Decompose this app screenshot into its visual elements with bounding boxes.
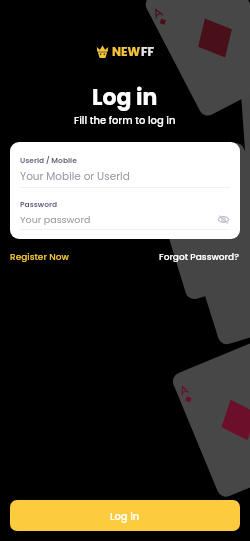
staticText: Userid / Mobile [20, 155, 77, 165]
staticText: Forgot Password? [159, 251, 240, 264]
button[interactable]: Forgot Password? [159, 251, 240, 264]
staticText: Your password [20, 213, 217, 226]
staticText: Log in [110, 509, 140, 523]
staticText: Register Now [10, 251, 69, 264]
staticText: Fill the form to log in [74, 113, 176, 127]
button[interactable]: Register Now [10, 251, 69, 264]
staticText: FF [141, 43, 155, 60]
button[interactable]: Log in [10, 500, 240, 531]
staticText: Log in [92, 82, 158, 113]
staticText: Your Mobile or UserId [20, 169, 130, 184]
staticText: NEW [112, 43, 141, 60]
staticText: Password [20, 199, 58, 209]
button[interactable]: Show password [217, 213, 230, 226]
